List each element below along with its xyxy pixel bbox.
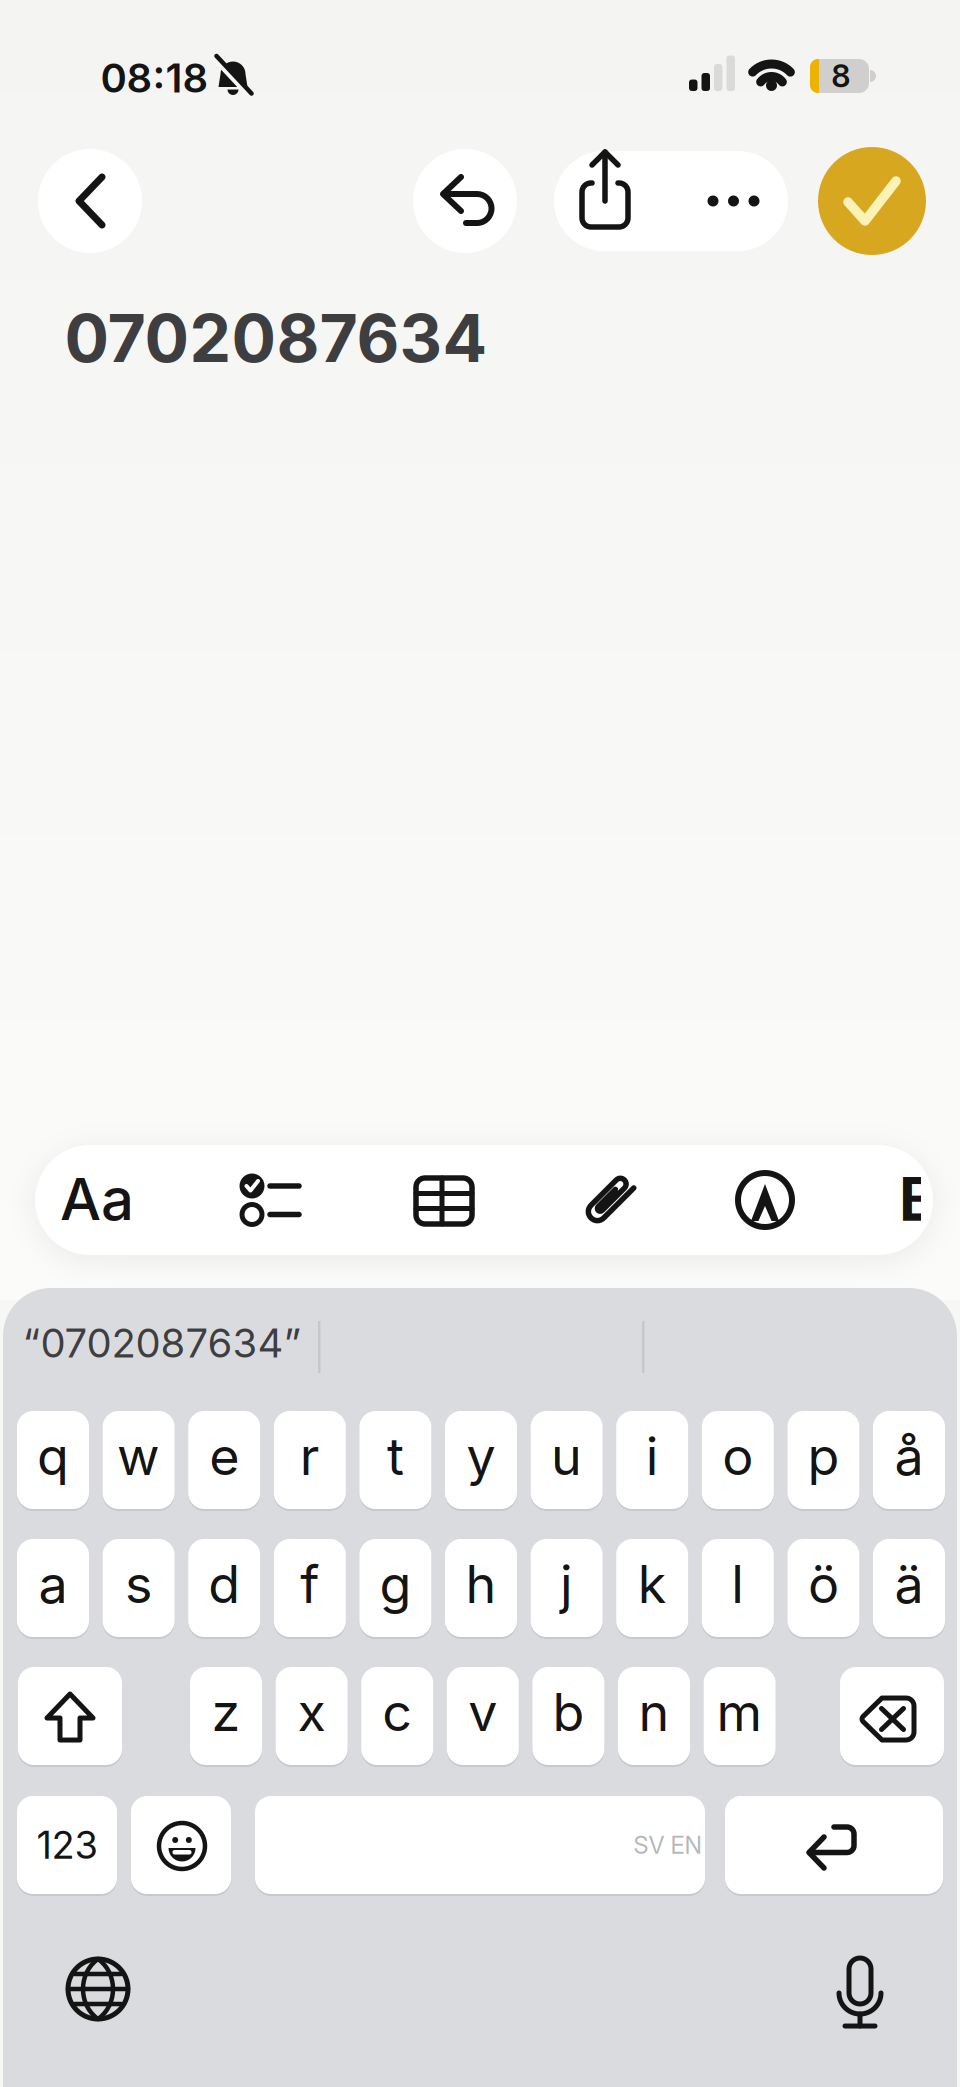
staticText: a	[38, 1553, 67, 1615]
button[interactable]: ä	[873, 1538, 945, 1638]
staticText: 8	[831, 58, 850, 94]
button[interactable]: B	[899, 1164, 921, 1234]
button[interactable]: b	[532, 1666, 604, 1766]
staticText: B	[899, 1164, 939, 1234]
staticText: r	[300, 1425, 320, 1487]
staticText: å	[894, 1425, 923, 1487]
button[interactable]	[725, 1795, 943, 1895]
button[interactable]: j	[531, 1538, 603, 1638]
button[interactable]	[210, 1145, 320, 1255]
staticText: h	[465, 1553, 496, 1615]
button[interactable]: r	[274, 1410, 346, 1510]
staticText: i	[646, 1425, 659, 1487]
button[interactable]: “0702087634”	[22, 1319, 301, 1367]
button[interactable]: g	[359, 1538, 431, 1638]
staticText: g	[379, 1553, 411, 1615]
button[interactable]: n	[618, 1666, 690, 1766]
button[interactable]: q	[17, 1410, 89, 1510]
button[interactable]	[818, 147, 926, 255]
button[interactable]: Aa	[42, 1144, 152, 1254]
staticText: y	[466, 1425, 495, 1487]
button[interactable]	[840, 1666, 944, 1766]
staticText: p	[807, 1425, 839, 1487]
staticText: ä	[894, 1553, 923, 1615]
staticText: m	[717, 1681, 763, 1743]
button[interactable]	[818, 1950, 902, 2040]
button[interactable]: i	[616, 1410, 688, 1510]
staticText: t	[387, 1425, 404, 1487]
button[interactable]: a	[17, 1538, 89, 1638]
staticText: q	[37, 1425, 69, 1487]
staticText: Aa	[60, 1165, 134, 1233]
button[interactable]	[388, 1145, 498, 1255]
button[interactable]: y	[445, 1410, 517, 1510]
button[interactable]: w	[103, 1410, 175, 1510]
button[interactable]	[710, 1145, 820, 1255]
staticText: d	[208, 1553, 240, 1615]
staticText: j	[560, 1553, 573, 1615]
staticText: 08:18	[100, 54, 208, 102]
button[interactable]: s	[103, 1538, 175, 1638]
button[interactable]	[554, 1145, 664, 1255]
staticText: c	[382, 1681, 412, 1743]
button[interactable]: ö	[787, 1538, 859, 1638]
staticText: e	[209, 1425, 239, 1487]
button[interactable]: f	[274, 1538, 346, 1638]
staticText: x	[298, 1681, 326, 1743]
button[interactable]: l	[702, 1538, 774, 1638]
staticText: n	[638, 1681, 669, 1743]
button[interactable]: v	[447, 1666, 519, 1766]
staticText: k	[638, 1553, 667, 1615]
button[interactable]: k	[616, 1538, 688, 1638]
button[interactable]	[56, 1947, 140, 2031]
button[interactable]: p	[787, 1410, 859, 1510]
staticText: SV EN	[633, 1831, 702, 1859]
staticText: “0702087634”	[22, 1319, 301, 1367]
button[interactable]	[413, 149, 517, 253]
button[interactable]: SV EN	[255, 1795, 705, 1895]
button[interactable]: h	[445, 1538, 517, 1638]
button[interactable]: x	[276, 1666, 348, 1766]
staticText: b	[552, 1681, 584, 1743]
staticText: o	[722, 1425, 753, 1487]
staticText: w	[117, 1425, 160, 1487]
button[interactable]: c	[361, 1666, 433, 1766]
button[interactable]: å	[873, 1410, 945, 1510]
staticText: s	[125, 1553, 152, 1615]
staticText: ö	[808, 1553, 839, 1615]
staticText: u	[551, 1425, 582, 1487]
staticText: f	[300, 1553, 319, 1615]
button[interactable]	[554, 151, 788, 251]
button[interactable]: d	[188, 1538, 260, 1638]
staticText: l	[731, 1553, 744, 1615]
button[interactable]: u	[531, 1410, 603, 1510]
button[interactable]: e	[188, 1410, 260, 1510]
staticText: 123	[36, 1823, 97, 1867]
staticText: v	[468, 1681, 497, 1743]
button[interactable]	[131, 1795, 231, 1895]
button[interactable]	[38, 149, 142, 253]
button[interactable]: 123	[17, 1795, 117, 1895]
button[interactable]: t	[359, 1410, 431, 1510]
staticText: z	[211, 1681, 240, 1743]
staticText: 0702087634	[64, 299, 487, 377]
button[interactable]: o	[702, 1410, 774, 1510]
button[interactable]: z	[190, 1666, 262, 1766]
button[interactable]	[18, 1666, 122, 1766]
button[interactable]: m	[704, 1666, 776, 1766]
